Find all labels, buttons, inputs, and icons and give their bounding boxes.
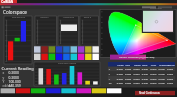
- button[interactable]: CalMAN colour analysis workspace: [0, 0, 177, 97]
